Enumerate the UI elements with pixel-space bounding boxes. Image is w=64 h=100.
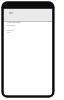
staticText: Eternity <box>7 23 16 26</box>
staticText: Carlos <box>7 28 15 31</box>
staticText: abc <box>9 11 14 15</box>
staticText: The Spanish <box>7 20 21 23</box>
staticText: Apr <box>7 30 11 33</box>
button[interactable]: abc <box>4 9 53 22</box>
